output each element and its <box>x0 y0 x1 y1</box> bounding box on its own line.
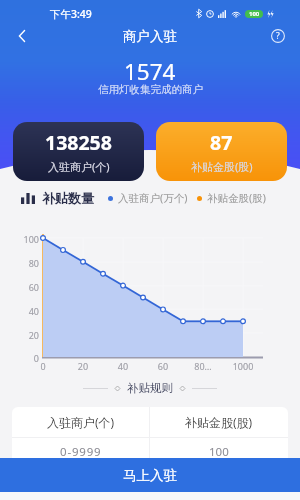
staticText: 100 <box>209 444 229 460</box>
button[interactable]: 帮助 <box>260 21 296 51</box>
staticText: 信用灯收集完成的商户 <box>98 83 203 96</box>
staticText: 20 <box>68 360 98 372</box>
staticText: 100 <box>249 10 260 18</box>
staticText: 0-9999 <box>60 444 102 460</box>
staticText: 商户入驻 <box>123 28 177 45</box>
staticText: 138258 <box>45 129 112 156</box>
staticText: 下午3:49 <box>50 7 92 21</box>
staticText: 马上入驻 <box>123 467 177 484</box>
staticText: 100 <box>8 233 39 245</box>
staticText: 87 <box>210 129 233 156</box>
staticText: 80 <box>8 257 39 269</box>
staticText: ? <box>276 30 280 42</box>
staticText: 补贴金股(股) <box>207 191 266 205</box>
staticText: 1574 <box>124 56 176 87</box>
staticText: 80… <box>188 360 218 372</box>
staticText: 入驻商户(万个) <box>118 191 188 205</box>
button[interactable]: 马上入驻 <box>0 458 300 492</box>
button[interactable]: 87 <box>156 122 287 181</box>
staticText: 60 <box>148 360 178 372</box>
staticText: 0 <box>28 360 58 372</box>
staticText: 20 <box>8 329 39 341</box>
staticText: 40 <box>108 360 138 372</box>
staticText: 入驻商户(个) <box>48 159 110 174</box>
staticText: 60 <box>8 281 39 293</box>
staticText: 补贴规则 <box>127 381 173 395</box>
staticText: 0 <box>8 352 39 364</box>
staticText: 补贴金股(股) <box>185 414 253 430</box>
staticText: 补贴金股(股) <box>191 159 253 174</box>
staticText: 1000 <box>228 360 258 372</box>
button[interactable]: 138258 <box>13 122 144 181</box>
staticText: 入驻商户(个) <box>47 414 115 430</box>
staticText: 40 <box>8 305 39 317</box>
button[interactable]: 返回 <box>4 21 40 51</box>
staticText: 补贴数量 <box>42 190 94 206</box>
